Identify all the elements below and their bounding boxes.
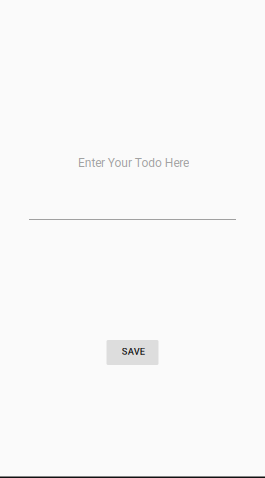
staticText: SAVE (122, 346, 145, 357)
button[interactable]: Enter Your Todo Here (29, 156, 236, 220)
button[interactable]: SAVE (106, 340, 158, 365)
staticText: Enter Your Todo Here (78, 156, 189, 170)
